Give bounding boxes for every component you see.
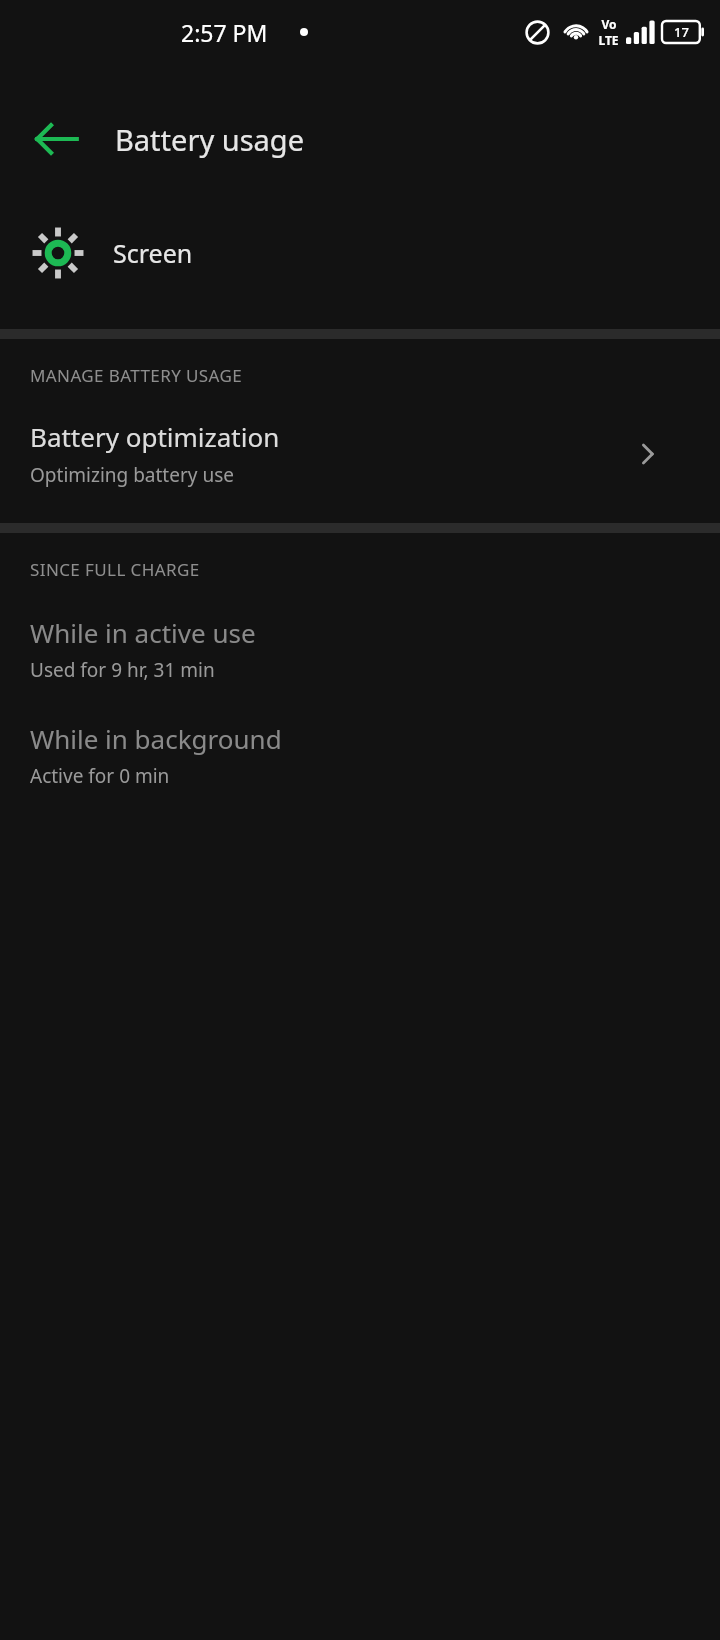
staticText: 2:57 PM xyxy=(181,17,268,48)
staticText: SINCE FULL CHARGE xyxy=(30,558,200,581)
button[interactable]: While in active use xyxy=(0,615,720,683)
staticText: While in active use xyxy=(30,615,256,650)
staticText: 17 xyxy=(674,23,689,41)
staticText: MANAGE BATTERY USAGE xyxy=(30,364,243,387)
staticText: Battery optimization xyxy=(30,419,280,454)
staticText: Battery usage xyxy=(115,120,304,159)
staticText: While in background xyxy=(30,721,282,756)
staticText: Vo xyxy=(601,16,617,32)
button[interactable]: Screen xyxy=(0,198,720,308)
staticText: Used for 9 hr, 31 min xyxy=(30,657,215,683)
button[interactable]: Battery optimization xyxy=(0,419,720,488)
button[interactable]: Back xyxy=(18,100,96,178)
staticText: Active for 0 min xyxy=(30,763,170,789)
staticText: Optimizing battery use xyxy=(30,462,234,488)
button[interactable]: While in background xyxy=(0,721,720,789)
staticText: LTE xyxy=(598,32,619,48)
staticText: Screen xyxy=(113,236,193,270)
